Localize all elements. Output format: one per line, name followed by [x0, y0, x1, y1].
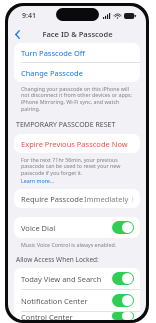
staticText: Notification Center [21, 296, 88, 306]
button[interactable]: Voice Dial [14, 217, 140, 238]
button[interactable]: Change Passcode [14, 63, 140, 82]
button[interactable]: Learn more... [21, 177, 55, 184]
staticText: TEMPORARY PASSCODE RESET [16, 120, 116, 130]
button[interactable]: Control Center [14, 312, 140, 320]
button[interactable]: Expire Previous Passcode Now [14, 134, 140, 153]
staticText: Learn more... [21, 177, 55, 184]
staticText: Immediately [84, 194, 129, 204]
button[interactable]: Notification Center [14, 290, 140, 311]
staticText: Change Passcode [21, 68, 83, 78]
staticText: Face ID & Passcode [42, 29, 113, 39]
staticText: Control Center [21, 312, 73, 320]
button[interactable]: Back [8, 25, 26, 43]
staticText: Changing your passcode on this iPhone wi… [21, 85, 135, 113]
button[interactable]: Today View and Search [14, 268, 140, 289]
staticText: 9:41 [22, 11, 36, 21]
staticText: Voice Dial [21, 223, 56, 233]
staticText: Today View and Search [21, 274, 102, 284]
staticText: Music Voice Control is always enabled. [21, 241, 117, 248]
staticText: Require Passcode [21, 194, 84, 204]
staticText: Expire Previous Passcode Now [21, 139, 128, 149]
staticText: For the next 71hr 56min, your previous p… [21, 156, 135, 177]
staticText: Turn Passcode Off [21, 48, 85, 58]
button[interactable]: Turn Passcode Off [14, 43, 140, 62]
button[interactable]: Require Passcode [14, 189, 140, 208]
staticText: Allow Access When Locked: [16, 255, 99, 264]
